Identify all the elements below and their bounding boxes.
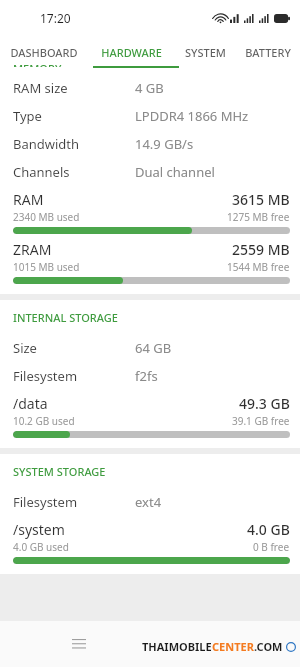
button[interactable]: Bandwidth xyxy=(0,130,300,158)
staticText: Type xyxy=(13,107,135,125)
staticText: INTERNAL STORAGE xyxy=(13,310,118,325)
staticText: SYSTEM xyxy=(185,45,226,60)
staticText: THAIMOBILE xyxy=(142,639,212,654)
staticText: 4 GB xyxy=(135,79,164,97)
staticText: 0 B free xyxy=(253,540,290,554)
staticText: /data xyxy=(13,394,48,413)
button[interactable]: BATTERY xyxy=(236,36,300,68)
staticText: 4.0 GB xyxy=(247,520,290,539)
staticText: Bandwidth xyxy=(13,135,135,153)
staticText: Size xyxy=(13,339,135,357)
staticText: /system xyxy=(13,520,65,539)
button[interactable]: Type xyxy=(0,102,300,130)
staticText: Filesystem xyxy=(13,367,135,385)
staticText: 1275 MB free xyxy=(227,210,290,224)
staticText: Dual channel xyxy=(135,163,215,181)
staticText: CENTER xyxy=(212,639,254,654)
staticText: SYSTEM STORAGE xyxy=(13,464,106,479)
button[interactable]: Filesystem xyxy=(0,488,300,516)
staticText: ext4 xyxy=(135,493,162,511)
staticText: MEMORY xyxy=(13,61,62,67)
button[interactable]: /data xyxy=(0,394,300,438)
staticText: 2559 MB xyxy=(232,240,290,259)
button[interactable]: Size xyxy=(0,334,300,362)
button[interactable]: DASHBOARD xyxy=(0,36,88,68)
staticText: DASHBOARD xyxy=(10,45,78,60)
staticText: 14.9 GB/s xyxy=(135,135,194,153)
staticText: LPDDR4 1866 MHz xyxy=(135,107,249,125)
staticText: 64 GB xyxy=(135,339,172,357)
staticText: 17:20 xyxy=(40,10,71,26)
staticText: Filesystem xyxy=(13,493,135,511)
staticText: 1544 MB free xyxy=(227,260,290,274)
staticText: Channels xyxy=(13,163,135,181)
staticText: 10.2 GB used xyxy=(13,414,75,428)
staticText: 49.3 GB xyxy=(239,394,290,413)
staticText: 3615 MB xyxy=(232,190,290,209)
button[interactable]: HARDWARE xyxy=(88,36,174,68)
staticText: HARDWARE xyxy=(101,45,162,60)
staticText: 2340 MB used xyxy=(13,210,80,224)
staticText: 1015 MB used xyxy=(13,260,80,274)
button[interactable]: RAM xyxy=(0,190,300,234)
button[interactable]: Menu xyxy=(62,627,96,661)
button[interactable]: /system xyxy=(0,520,300,564)
staticText: ZRAM xyxy=(13,240,52,259)
button[interactable]: SYSTEM xyxy=(174,36,236,68)
staticText: BATTERY xyxy=(245,45,291,60)
button[interactable]: Filesystem xyxy=(0,362,300,390)
staticText: 4.0 GB used xyxy=(13,540,69,554)
staticText: RAM size xyxy=(13,79,135,97)
staticText: .COM xyxy=(254,639,283,654)
button[interactable]: Channels xyxy=(0,158,300,186)
button[interactable]: ZRAM xyxy=(0,240,300,284)
button[interactable]: RAM size xyxy=(0,74,300,102)
staticText: f2fs xyxy=(135,367,158,385)
staticText: 39.1 GB free xyxy=(232,414,290,428)
staticText: RAM xyxy=(13,190,44,209)
